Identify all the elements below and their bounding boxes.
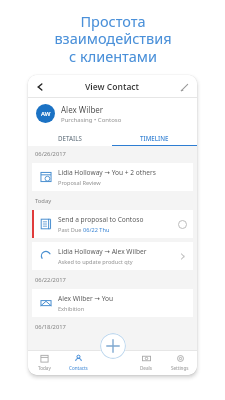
button[interactable]: TIMELINE <box>112 129 197 146</box>
staticText: Exhibition <box>58 305 85 313</box>
staticText: 06/22 Thu <box>83 226 110 234</box>
staticText: View Contact <box>85 81 140 93</box>
staticText: 06/18/2017 <box>35 323 66 331</box>
button[interactable]: Today <box>28 350 61 375</box>
staticText: DETAILS <box>58 134 82 142</box>
staticText: Past Due <box>58 226 83 234</box>
staticText: Send a proposal to Contoso <box>58 215 144 224</box>
button[interactable]: Alex Wilber → You <box>32 289 193 317</box>
button[interactable]: DETAILS <box>28 129 112 146</box>
button[interactable]: Back <box>32 79 48 95</box>
button[interactable]: Lidia Holloway → You + 2 others <box>32 163 193 191</box>
staticText: Asked to update product qty <box>58 258 133 266</box>
button[interactable]: Deals <box>129 350 163 375</box>
staticText: Settings <box>171 365 189 371</box>
button[interactable]: Settings <box>163 350 197 375</box>
button[interactable]: Send a proposal to Contoso <box>32 210 193 238</box>
button[interactable]: Contacts <box>61 350 95 375</box>
staticText: Alex Wilber → You <box>58 294 114 303</box>
staticText: 06/26/2017 <box>35 150 66 158</box>
staticText: Contacts <box>69 365 88 371</box>
button[interactable]: AW <box>36 98 197 129</box>
staticText: AW <box>41 110 51 118</box>
staticText: Today <box>38 365 51 371</box>
staticText: Today <box>35 197 52 205</box>
staticText: Lidia Holloway → Alex Wilber <box>58 247 147 256</box>
button[interactable]: Edit <box>176 79 192 95</box>
staticText: Purchasing • Contoso <box>61 116 122 124</box>
staticText: Deals <box>140 365 152 371</box>
button[interactable]: Add <box>100 333 126 359</box>
staticText: TIMELINE <box>140 134 169 142</box>
staticText: Alex Wilber <box>61 104 104 115</box>
staticText: Lidia Holloway → You + 2 others <box>58 168 156 177</box>
staticText: Простота взаимодействия с клиентами <box>54 11 172 66</box>
staticText: Proposal Review <box>58 179 101 187</box>
button[interactable]: Lidia Holloway → Alex Wilber <box>32 242 193 270</box>
staticText: 06/22/2017 <box>35 276 66 284</box>
